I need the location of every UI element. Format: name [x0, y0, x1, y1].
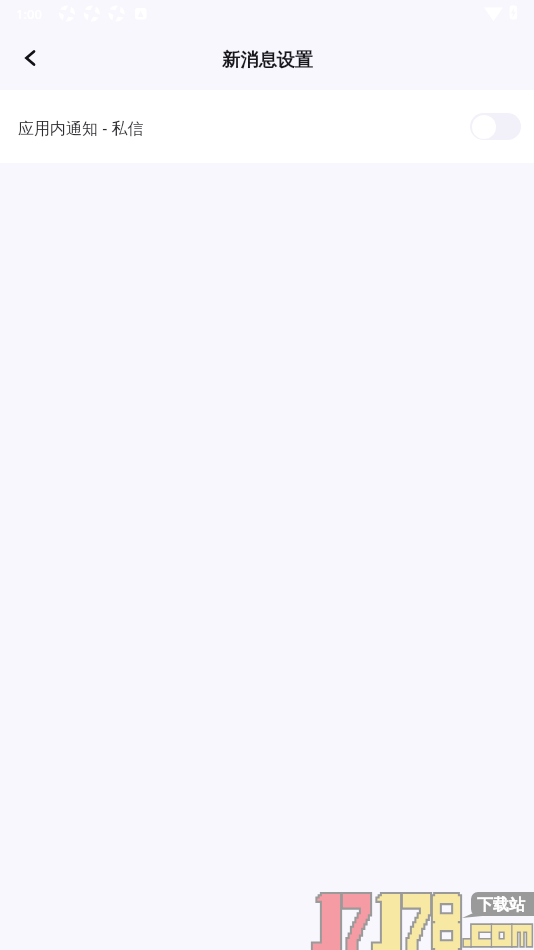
staticText: 下载站 — [477, 895, 525, 915]
button[interactable]: Back — [6, 34, 54, 82]
button[interactable]: 应用内通知 - 私信 — [0, 90, 534, 163]
button[interactable]: Toggle in-app notification for direct me… — [470, 113, 521, 140]
staticText: 应用内通知 - 私信 — [18, 117, 144, 139]
staticText: 新消息设置 — [222, 48, 313, 71]
